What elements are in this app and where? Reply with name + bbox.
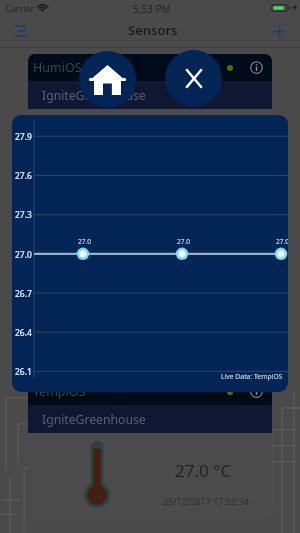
staticText: 26.7 bbox=[15, 288, 32, 300]
button[interactable]: Info bbox=[250, 61, 263, 74]
staticText: 27.3 bbox=[15, 209, 32, 221]
button[interactable]: Home bbox=[79, 51, 136, 108]
staticText: HumiOS bbox=[33, 59, 82, 76]
staticText: IgniteGreenhouse bbox=[42, 411, 146, 428]
button[interactable]: HumiOS bbox=[28, 54, 272, 196]
staticText: 26.4 bbox=[15, 327, 32, 339]
staticText: 27.0 °C bbox=[175, 135, 232, 158]
staticText: TempiOS bbox=[33, 383, 86, 400]
staticText: 27.0 bbox=[276, 237, 288, 246]
button[interactable]: Close bbox=[165, 50, 222, 107]
staticText: 27.0 bbox=[78, 237, 91, 246]
button[interactable]: Menu bbox=[6, 16, 35, 45]
staticText: 5:53 PM bbox=[133, 2, 171, 16]
button[interactable]: Info bbox=[250, 385, 263, 398]
staticText: 27.0 bbox=[177, 237, 190, 246]
staticText: 26.1 bbox=[15, 366, 32, 378]
staticText: 27.6 bbox=[15, 170, 32, 182]
staticText: Sensors bbox=[128, 21, 178, 39]
staticText: Carrier bbox=[5, 2, 35, 14]
staticText: 25/12/2017 17:53:34 bbox=[163, 171, 249, 183]
button[interactable]: TempiOS bbox=[28, 378, 272, 520]
staticText: IgniteGreenhouse bbox=[42, 87, 146, 104]
staticText: 27.0 bbox=[15, 249, 32, 261]
button[interactable]: Add bbox=[265, 17, 293, 46]
staticText: Live Data: TempiOS bbox=[221, 372, 283, 381]
staticText: 25/12/2017 17:53:34 bbox=[163, 495, 249, 507]
staticText: 27.9 bbox=[15, 131, 32, 143]
staticText: 27.0 °C bbox=[175, 459, 232, 482]
